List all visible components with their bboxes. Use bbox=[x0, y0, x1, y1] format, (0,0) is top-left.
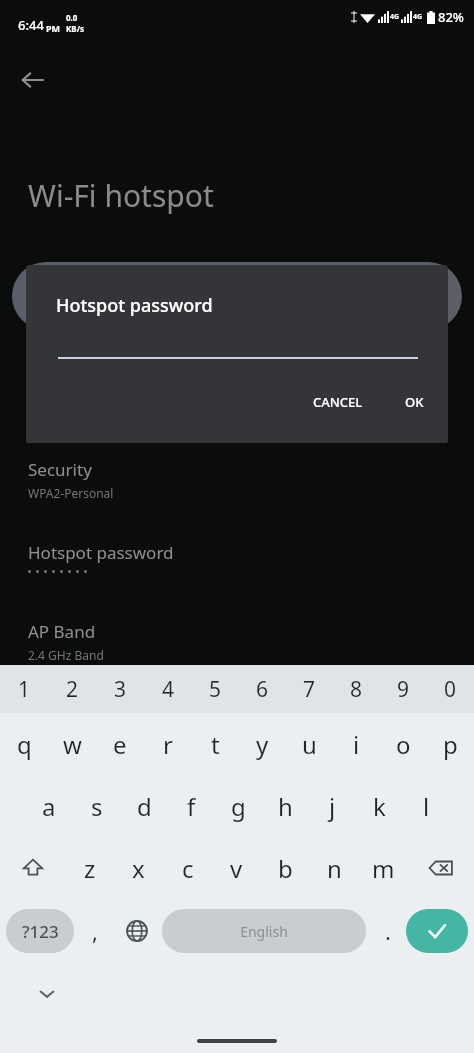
staticText: 7 bbox=[303, 675, 316, 704]
button[interactable]: o bbox=[380, 713, 427, 775]
staticText: Hotspot password bbox=[28, 541, 174, 564]
staticText: 9 bbox=[397, 675, 410, 704]
staticText: d bbox=[137, 790, 152, 823]
button[interactable]: r bbox=[144, 713, 192, 775]
button[interactable]: a bbox=[25, 775, 73, 837]
button[interactable]: f bbox=[168, 775, 215, 837]
button[interactable]: n bbox=[310, 837, 359, 899]
staticText: m bbox=[372, 852, 395, 885]
staticText: Wi-Fi hotspot bbox=[28, 175, 214, 216]
button[interactable]: 7 bbox=[286, 665, 333, 713]
button[interactable]: 3 bbox=[96, 665, 144, 713]
staticText: f bbox=[187, 790, 196, 823]
button[interactable]: 8 bbox=[333, 665, 380, 713]
button[interactable]: j bbox=[309, 775, 356, 837]
button[interactable]: 2 bbox=[48, 665, 96, 713]
staticText: . bbox=[385, 916, 391, 946]
staticText: e bbox=[113, 728, 127, 761]
button[interactable]: English bbox=[162, 909, 366, 953]
staticText: 6 bbox=[256, 675, 269, 704]
staticText: 0 bbox=[444, 675, 457, 704]
staticText: a bbox=[42, 790, 56, 823]
staticText: 3 bbox=[114, 675, 127, 704]
staticText: , bbox=[92, 916, 98, 946]
button[interactable]: 0 bbox=[427, 665, 474, 713]
button[interactable]: 9 bbox=[380, 665, 427, 713]
staticText: 4G bbox=[413, 12, 423, 22]
button[interactable]: m bbox=[359, 837, 408, 899]
staticText: 8 bbox=[350, 675, 363, 704]
button[interactable]: Backspace bbox=[408, 837, 474, 899]
button[interactable]: l bbox=[403, 775, 450, 837]
button[interactable]: 6 bbox=[239, 665, 286, 713]
button[interactable]: v bbox=[212, 837, 261, 899]
button[interactable]: 5 bbox=[192, 665, 239, 713]
button[interactable]: . bbox=[370, 899, 406, 963]
button[interactable]: CANCEL bbox=[303, 385, 373, 419]
button[interactable]: ?123 bbox=[6, 909, 74, 953]
button[interactable]: Shift bbox=[0, 837, 65, 899]
staticText: Hotspot password bbox=[56, 293, 213, 318]
staticText: 2 bbox=[66, 675, 79, 704]
button[interactable]: u bbox=[286, 713, 333, 775]
staticText: 0.0 bbox=[66, 12, 78, 23]
button[interactable]: , bbox=[74, 899, 116, 963]
button[interactable]: w bbox=[48, 713, 96, 775]
button[interactable]: z bbox=[65, 837, 114, 899]
button[interactable]: p bbox=[427, 713, 474, 775]
staticText: KB/s bbox=[66, 23, 84, 34]
button[interactable]: b bbox=[261, 837, 310, 899]
staticText: 4G bbox=[390, 12, 400, 22]
staticText: u bbox=[302, 728, 317, 761]
staticText: 82% bbox=[438, 8, 464, 26]
staticText: p bbox=[443, 728, 458, 761]
staticText: 4 bbox=[162, 675, 175, 704]
button[interactable]: x bbox=[114, 837, 163, 899]
button[interactable]: t bbox=[192, 713, 239, 775]
button[interactable]: e bbox=[96, 713, 144, 775]
staticText: 6:44 bbox=[18, 16, 44, 34]
staticText: 2.4 GHz Band bbox=[28, 647, 104, 663]
staticText: q bbox=[17, 728, 32, 761]
staticText: PM bbox=[46, 22, 61, 34]
staticText: k bbox=[373, 790, 386, 823]
staticText: r bbox=[163, 728, 173, 761]
button[interactable]: d bbox=[121, 775, 168, 837]
button[interactable]: h bbox=[262, 775, 309, 837]
staticText: z bbox=[84, 852, 96, 885]
staticText: h bbox=[278, 790, 293, 823]
staticText: y bbox=[256, 728, 269, 761]
staticText: ?123 bbox=[22, 920, 59, 943]
staticText: Security bbox=[28, 458, 92, 481]
button[interactable]: Change language bbox=[116, 899, 158, 963]
button[interactable]: q bbox=[0, 713, 48, 775]
button[interactable]: OK bbox=[395, 385, 434, 419]
button[interactable]: Hide keyboard bbox=[30, 977, 64, 1011]
staticText: n bbox=[327, 852, 342, 885]
button[interactable]: s bbox=[73, 775, 121, 837]
staticText: w bbox=[63, 728, 82, 761]
staticText: WPA2-Personal bbox=[28, 485, 114, 501]
staticText: g bbox=[231, 790, 246, 823]
button[interactable]: Enter bbox=[406, 909, 468, 953]
staticText: l bbox=[423, 790, 430, 823]
staticText: c bbox=[182, 852, 194, 885]
button[interactable]: g bbox=[215, 775, 262, 837]
staticText: CANCEL bbox=[313, 393, 363, 411]
button[interactable]: y bbox=[239, 713, 286, 775]
button[interactable]: k bbox=[356, 775, 403, 837]
staticText: 5 bbox=[209, 675, 222, 704]
button[interactable]: 1 bbox=[0, 665, 48, 713]
staticText: v bbox=[230, 852, 243, 885]
staticText: English bbox=[240, 922, 288, 941]
button[interactable]: c bbox=[163, 837, 212, 899]
staticText: t bbox=[211, 728, 220, 761]
staticText: s bbox=[91, 790, 103, 823]
staticText: 1 bbox=[18, 675, 31, 704]
staticText: x bbox=[132, 852, 145, 885]
staticText: OK bbox=[405, 393, 424, 411]
staticText: o bbox=[396, 728, 411, 761]
button[interactable]: Back bbox=[8, 56, 56, 104]
button[interactable]: 4 bbox=[144, 665, 192, 713]
button[interactable]: i bbox=[333, 713, 380, 775]
